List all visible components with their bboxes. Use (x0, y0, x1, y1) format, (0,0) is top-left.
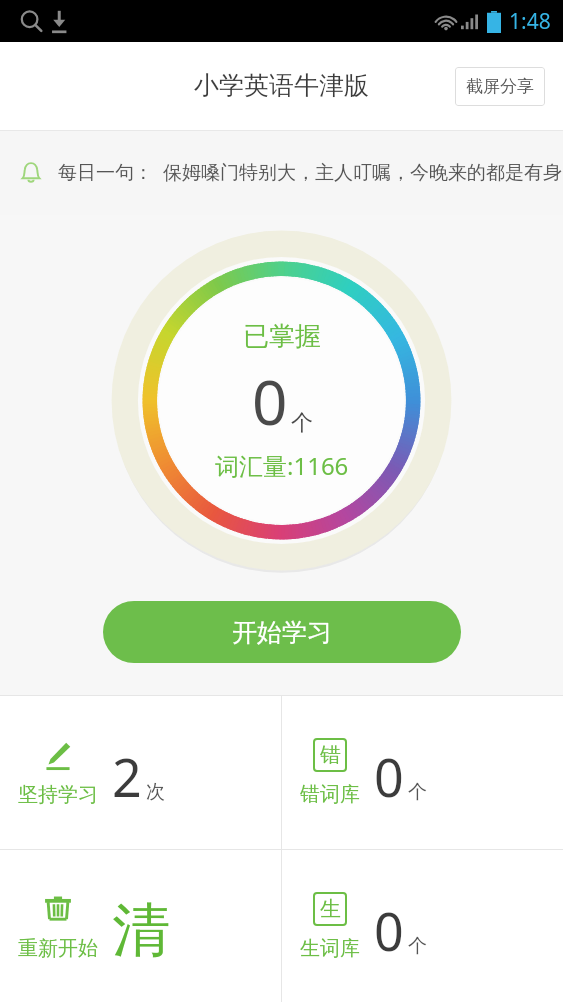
staticText: 错词库 (300, 782, 360, 807)
other: 错 (313, 738, 347, 772)
staticText: 0 (252, 359, 288, 443)
staticText: 清 (112, 894, 170, 967)
staticText: 坚持学习 (18, 782, 98, 807)
staticText: 1:48 (509, 7, 551, 36)
staticText: 小学英语牛津版 (194, 70, 369, 101)
staticText: 词汇量:1166 (215, 449, 349, 482)
other: 坚持学习 (41, 738, 75, 772)
staticText: 个 (408, 934, 427, 958)
staticText: 重新开始 (18, 936, 98, 961)
staticText: 每日一句： (58, 161, 153, 185)
button[interactable]: 生 (282, 850, 563, 1002)
staticText: 生词库 (300, 936, 360, 961)
staticText: 2 (112, 741, 142, 812)
staticText: 0 (374, 741, 404, 812)
staticText: 个 (408, 780, 427, 804)
staticText: 个 (291, 409, 313, 437)
button[interactable]: 每日一句： (0, 131, 563, 215)
button[interactable]: 坚持学习 (0, 696, 281, 849)
button[interactable]: 错 (282, 696, 563, 849)
staticText: 0 (374, 895, 404, 966)
button[interactable]: 开始学习 (103, 601, 461, 663)
staticText: 错 (320, 742, 341, 768)
staticText: 保姆嗓门特别大，主人叮嘱，今晚来的都是有身 (163, 161, 562, 185)
other: 生 (313, 892, 347, 926)
staticText: 截屏分享 (466, 76, 534, 97)
staticText: 开始学习 (232, 617, 332, 648)
button[interactable]: 截屏分享 (455, 67, 545, 106)
staticText: 生 (320, 896, 341, 922)
staticText: 次 (146, 780, 165, 804)
other: 重新开始 (41, 892, 75, 926)
button[interactable]: 重新开始 (0, 850, 281, 1002)
staticText: 已掌握 (243, 320, 321, 353)
